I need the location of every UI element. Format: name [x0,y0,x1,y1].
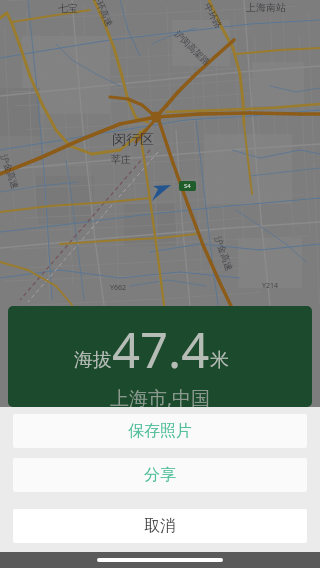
staticText: 上海南站 [246,1,286,14]
staticText: 沪闵高架路 [172,28,212,67]
staticText: Y214 [262,281,278,291]
staticText: 米 [210,348,229,372]
staticText: 外环高速 [91,0,115,28]
button[interactable]: 保存照片 [13,414,307,448]
staticText: 中环路 [202,1,225,30]
staticText: 分享 [144,465,176,485]
staticText: 沪金高速 [0,153,21,190]
staticText: 海拔 [74,348,112,372]
staticText: 沪金高速 [213,235,235,272]
staticText: 七宝 [58,2,78,15]
button[interactable]: 取消 [13,509,307,543]
staticText: 上海市,中国 [110,385,211,407]
staticText: Y662 [110,283,126,293]
button[interactable]: 分享 [13,458,307,492]
staticText: S4 [184,182,191,190]
staticText: 保存照片 [128,421,192,441]
staticText: 取消 [144,516,176,536]
staticText: 闵行区 [112,131,154,149]
staticText: 莘庄 [111,153,131,166]
staticText: 47.4 [112,316,210,383]
